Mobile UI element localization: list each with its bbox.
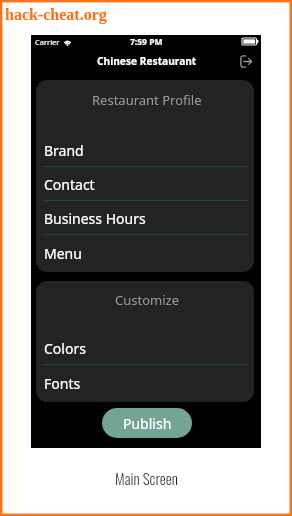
button[interactable]: Business Hours <box>36 201 254 235</box>
button[interactable]: Brand <box>36 133 254 167</box>
staticText: hack-cheat.org <box>5 6 107 24</box>
staticText: Restaurant Profile <box>92 91 202 109</box>
staticText: 7:59 PM <box>130 36 163 48</box>
staticText: Carrier <box>35 37 60 47</box>
button[interactable]: Menu <box>36 235 254 272</box>
staticText: Colors <box>44 339 86 358</box>
button[interactable]: Colors <box>36 331 254 365</box>
staticText: Publish <box>123 414 172 433</box>
button[interactable]: Fonts <box>36 365 254 402</box>
staticText: Customize <box>115 291 179 309</box>
staticText: Business Hours <box>44 209 146 228</box>
staticText: Fonts <box>44 374 81 393</box>
staticText: Brand <box>44 141 84 160</box>
button[interactable]: Log out <box>235 50 257 72</box>
staticText: Main Screen <box>115 467 178 489</box>
button[interactable]: Publish <box>102 408 192 438</box>
staticText: Chinese Restaurant <box>97 54 197 68</box>
staticText: Menu <box>44 244 82 263</box>
button[interactable]: Contact <box>36 167 254 201</box>
staticText: Contact <box>44 175 95 194</box>
